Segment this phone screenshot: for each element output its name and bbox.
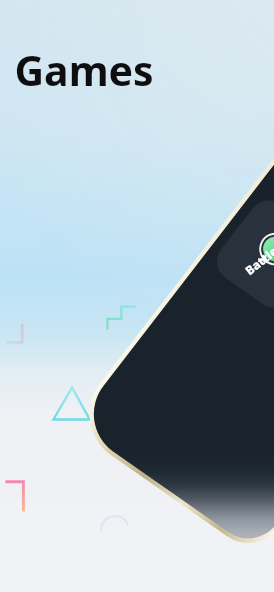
other: Games (0, 0, 274, 592)
